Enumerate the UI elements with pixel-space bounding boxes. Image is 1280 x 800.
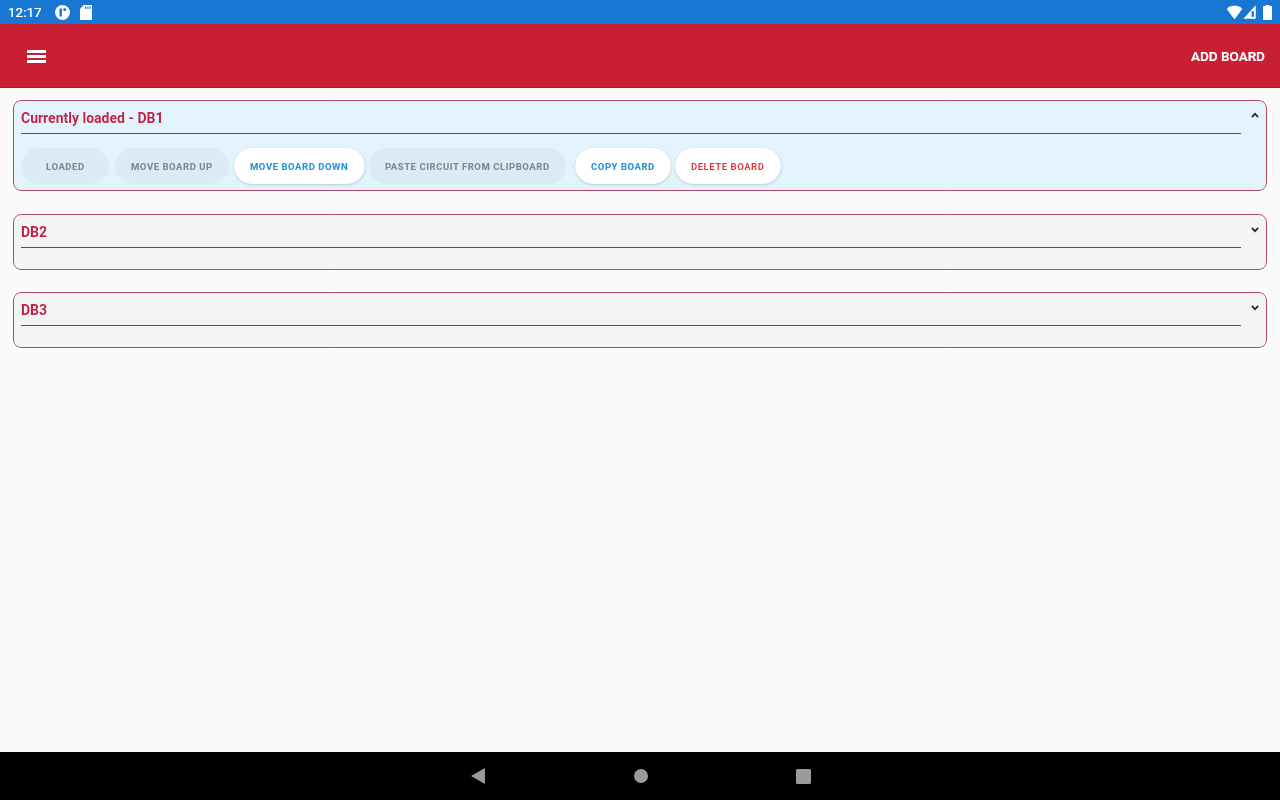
button[interactable]: Collapse board [1251,111,1259,119]
staticText: LOADED [46,161,85,172]
button[interactable]: Expand board [1251,303,1259,311]
button[interactable]: PASTE CIRCUIT FROM CLIPBOARD [369,148,566,184]
staticText: PASTE CIRCUIT FROM CLIPBOARD [385,161,550,172]
button[interactable]: MOVE BOARD UP [115,148,229,184]
button[interactable]: Back [396,752,559,800]
staticText: DB2 [21,224,48,240]
staticText: MOVE BOARD UP [131,161,213,172]
button[interactable]: LOADED [21,148,109,184]
staticText: MOVE BOARD DOWN [250,161,349,172]
staticText: DELETE BOARD [691,161,765,172]
staticText: COPY BOARD [591,161,655,172]
button[interactable]: COPY BOARD [575,148,671,184]
button[interactable]: Expand board [1251,225,1259,233]
staticText: ADD BOARD [1191,48,1265,64]
staticText: Currently loaded - DB1 [21,110,164,126]
button[interactable]: MOVE BOARD DOWN [234,148,365,184]
button[interactable]: ADD BOARD [1183,34,1273,78]
staticText: 12:17 [8,4,42,20]
button[interactable]: Recent apps [722,752,885,800]
button[interactable]: Currently loaded - DB1 [13,100,1267,191]
staticText: DB3 [21,302,48,318]
button[interactable]: Home [559,752,722,800]
button[interactable]: Open navigation menu [12,32,60,80]
button[interactable]: DB3 [13,292,1267,348]
button[interactable]: DELETE BOARD [675,148,781,184]
button[interactable]: DB2 [13,214,1267,270]
